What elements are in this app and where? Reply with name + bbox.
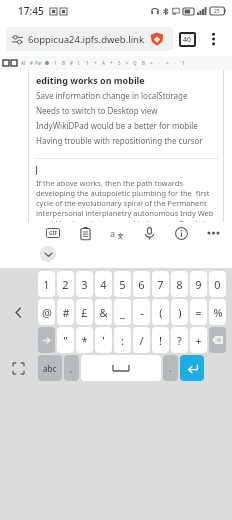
button[interactable]: 3 — [76, 271, 93, 297]
button[interactable]: Editor tool — [123, 58, 131, 68]
staticText: # — [62, 305, 70, 320]
staticText: 7 — [157, 277, 164, 292]
button[interactable]: : — [114, 327, 131, 353]
button[interactable]: Editor tool — [147, 58, 155, 68]
staticText: editing works on mobile — [36, 74, 145, 86]
button[interactable]: Enter — [180, 355, 204, 381]
staticText: - — [174, 60, 176, 66]
button[interactable]: = — [190, 299, 207, 325]
button[interactable]: & — [95, 299, 112, 325]
button[interactable]: - — [133, 299, 150, 325]
staticText: & — [99, 305, 108, 320]
button[interactable]: ( — [152, 299, 169, 325]
staticText: ' — [102, 333, 105, 348]
button[interactable]: 1 — [38, 271, 55, 297]
button[interactable]: ' — [95, 327, 112, 353]
button[interactable]: Editor tool — [179, 58, 187, 68]
button[interactable]: 2 — [57, 271, 74, 297]
button[interactable]: ! — [152, 327, 169, 353]
button[interactable]: abc — [38, 355, 62, 381]
staticText: : — [121, 333, 124, 348]
button[interactable]: , — [64, 355, 79, 381]
button[interactable]: 6 — [133, 271, 150, 297]
button[interactable]: Editor tool — [131, 58, 139, 68]
button[interactable]: ? — [171, 327, 188, 353]
button[interactable]: Editor tool — [155, 58, 163, 68]
button[interactable]: Previous page — [0, 299, 37, 325]
button[interactable]: More — [204, 224, 222, 242]
button[interactable]: Editor tool — [83, 58, 91, 68]
button[interactable]: Editor tool — [115, 58, 123, 68]
button[interactable]: Resize keyboard — [0, 355, 37, 381]
button[interactable]: / — [133, 327, 150, 353]
button[interactable]: Editor tool — [35, 58, 43, 68]
staticText: # — [70, 60, 73, 66]
button[interactable]: Editor tool — [107, 58, 115, 68]
staticText: 2 — [62, 277, 69, 292]
button[interactable]: Space — [81, 355, 161, 381]
staticText: @ — [42, 305, 52, 320]
button[interactable]: 5 — [114, 271, 131, 297]
staticText: ? — [177, 333, 182, 348]
button[interactable]: Editor tool — [59, 58, 67, 68]
button[interactable]: . — [163, 355, 178, 381]
button[interactable]: Translate — [108, 224, 126, 242]
button[interactable]: Symbols page — [38, 327, 55, 353]
button[interactable]: Brave Shields — [150, 32, 164, 46]
button[interactable]: Editor tool — [67, 58, 75, 68]
button[interactable]: £ — [76, 299, 93, 325]
button[interactable]: Info — [172, 224, 190, 242]
button[interactable]: # — [57, 299, 74, 325]
button[interactable]: + — [190, 327, 207, 353]
staticText: = — [150, 60, 153, 66]
button[interactable]: Editor tool — [99, 58, 107, 68]
button[interactable]: Tabs — [179, 32, 196, 47]
staticText: 17:45 — [18, 4, 44, 18]
button[interactable]: More options — [202, 28, 224, 50]
staticText: B — [62, 60, 65, 66]
button[interactable]: Voice input — [140, 224, 158, 242]
button[interactable]: Editor tool — [139, 58, 147, 68]
button[interactable]: 9 — [190, 271, 207, 297]
button[interactable]: 8 — [171, 271, 188, 297]
staticText: 1 — [182, 60, 185, 66]
staticText: IndyWikiDPad would be a better for mobil… — [36, 120, 198, 131]
button[interactable]: Editor tool — [51, 58, 59, 68]
button[interactable]: _ — [114, 299, 131, 325]
staticText: = — [166, 60, 169, 66]
button[interactable]: * — [76, 327, 93, 353]
button[interactable]: Editor tool — [91, 58, 99, 68]
staticText: 25 — [214, 8, 220, 15]
button[interactable]: Editor tool — [27, 58, 35, 68]
staticText: 8 — [176, 277, 183, 292]
button[interactable]: Editor tool — [43, 58, 51, 68]
button[interactable]: Clipboard — [76, 224, 94, 242]
button[interactable]: 0 — [209, 271, 226, 297]
button[interactable]: GIF insert — [44, 224, 62, 242]
staticText: - — [140, 305, 144, 320]
staticText: * — [110, 60, 113, 66]
button[interactable]: Site settings — [6, 27, 173, 51]
button[interactable]: 7 — [152, 271, 169, 297]
button[interactable]: Toolbar action — [11, 60, 17, 66]
button[interactable]: Editor tool — [163, 58, 171, 68]
staticText: = — [195, 305, 202, 320]
button[interactable]: % — [209, 299, 226, 325]
button[interactable]: Editor tool — [75, 58, 83, 68]
button[interactable]: Editor tool — [171, 58, 179, 68]
staticText: ! — [159, 333, 162, 348]
button[interactable]: @ — [38, 299, 55, 325]
button[interactable]: ) — [171, 299, 188, 325]
staticText: GIF — [49, 230, 58, 237]
button[interactable]: Toolbar action — [3, 60, 9, 66]
button[interactable]: Editor tool — [19, 58, 27, 68]
staticText: If the above works, then the path toward… — [36, 178, 218, 222]
button[interactable]: Collapse — [40, 246, 56, 262]
staticText: a — [110, 227, 116, 239]
button[interactable]: Backspace — [209, 327, 226, 353]
button[interactable]: " — [57, 327, 74, 353]
staticText: 9 — [195, 277, 202, 292]
button[interactable]: 4 — [95, 271, 112, 297]
staticText: , — [70, 363, 73, 374]
staticText: Needs to switch to Desktop view — [36, 105, 158, 116]
